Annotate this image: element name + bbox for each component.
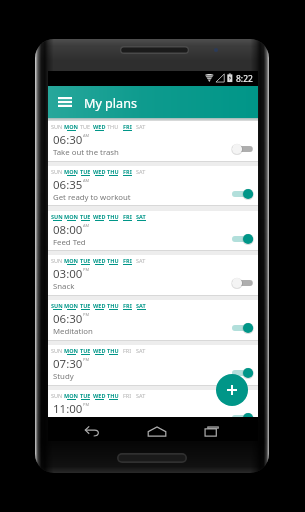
staticText: 11:00	[53, 401, 83, 417]
staticText: THU	[107, 168, 119, 175]
staticText: WED	[93, 123, 106, 130]
staticText: FRI	[123, 168, 132, 175]
staticText: SUN	[51, 302, 63, 309]
staticText: MON	[64, 257, 78, 264]
button[interactable]: Alarm on	[231, 412, 254, 424]
staticText: MON	[64, 123, 78, 130]
staticText: PM	[83, 267, 90, 272]
staticText: Meditation	[53, 326, 93, 337]
staticText: 07:30	[53, 356, 83, 372]
staticText: THU	[107, 302, 119, 309]
staticText: My plans	[84, 95, 137, 112]
staticText: WED	[93, 302, 106, 309]
staticText: MON	[64, 347, 78, 354]
staticText: WED	[93, 392, 106, 399]
staticText: SAT	[136, 213, 146, 220]
staticText: Get ready to workout	[53, 192, 131, 203]
staticText: SAT	[136, 392, 146, 399]
staticText: 06:30	[53, 311, 83, 327]
staticText: MON	[64, 392, 78, 399]
staticText: Take out the trash	[53, 147, 119, 158]
button[interactable]: SUN	[48, 345, 258, 385]
staticText: MON	[64, 168, 78, 175]
button[interactable]: Alarm on	[231, 188, 254, 200]
staticText: MON	[64, 302, 78, 309]
staticText: 8:22	[236, 73, 253, 85]
staticText: SUN	[51, 392, 63, 399]
staticText: SAT	[136, 257, 146, 264]
staticText: SAT	[136, 302, 146, 309]
staticText: THU	[107, 392, 119, 399]
staticText: TUE	[80, 168, 91, 175]
staticText: FRI	[123, 257, 132, 264]
staticText: SUN	[51, 123, 63, 130]
staticText: TUE	[80, 213, 91, 220]
staticText: SUN	[51, 213, 63, 220]
button[interactable]: SUN	[48, 121, 258, 161]
staticText: THU	[107, 257, 119, 264]
staticText: FRI	[123, 302, 132, 309]
staticText: Feed Ted	[53, 237, 86, 248]
staticText: FRI	[123, 213, 132, 220]
staticText: FRI	[123, 123, 132, 130]
button[interactable]: SUN	[48, 300, 258, 340]
button[interactable]: Alarm on	[231, 367, 254, 379]
button[interactable]: Alarm on	[231, 233, 254, 245]
staticText: PM	[83, 312, 90, 317]
staticText: MON	[64, 213, 78, 220]
staticText: SUN	[51, 168, 63, 175]
staticText: WED	[93, 168, 106, 175]
staticText: Snack	[53, 281, 75, 292]
staticText: 03:00	[53, 266, 83, 282]
button[interactable]: SUN	[48, 166, 258, 206]
button[interactable]: SUN	[48, 211, 258, 251]
staticText: 08:00	[53, 222, 83, 238]
staticText: FRI	[123, 347, 132, 354]
staticText: THU	[107, 213, 119, 220]
button[interactable]: SUN	[48, 390, 258, 430]
staticText: AM	[83, 133, 90, 138]
button[interactable]: Open navigation menu	[58, 97, 72, 107]
staticText: SUN	[51, 257, 63, 264]
staticText: TUE	[80, 347, 91, 354]
staticText: 06:30	[53, 132, 83, 148]
staticText: AM	[83, 223, 90, 228]
button[interactable]: Add plan	[216, 374, 248, 406]
staticText: TUE	[80, 257, 91, 264]
staticText: SUN	[51, 347, 63, 354]
staticText: TUE	[80, 392, 91, 399]
staticText: Study	[53, 371, 74, 382]
staticText: SAT	[136, 347, 146, 354]
staticText: SAT	[136, 168, 146, 175]
staticText: PM	[83, 402, 90, 407]
button[interactable]: Alarm on	[231, 322, 254, 334]
staticText: 06:35	[53, 177, 83, 193]
staticText: THU	[107, 347, 119, 354]
button[interactable]: SUN	[48, 255, 258, 295]
staticText: AM	[83, 178, 90, 183]
staticText: FRI	[123, 392, 132, 399]
staticText: TUE	[80, 302, 91, 309]
staticText: SAT	[136, 123, 146, 130]
staticText: WED	[93, 213, 106, 220]
staticText: Sleep	[53, 416, 73, 427]
staticText: TUE	[80, 123, 91, 130]
staticText: WED	[93, 257, 106, 264]
staticText: THU	[107, 123, 119, 130]
staticText: WED	[93, 347, 106, 354]
staticText: PM	[83, 357, 90, 362]
button[interactable]: Alarm off	[231, 143, 254, 155]
button[interactable]: Alarm off	[231, 277, 254, 289]
